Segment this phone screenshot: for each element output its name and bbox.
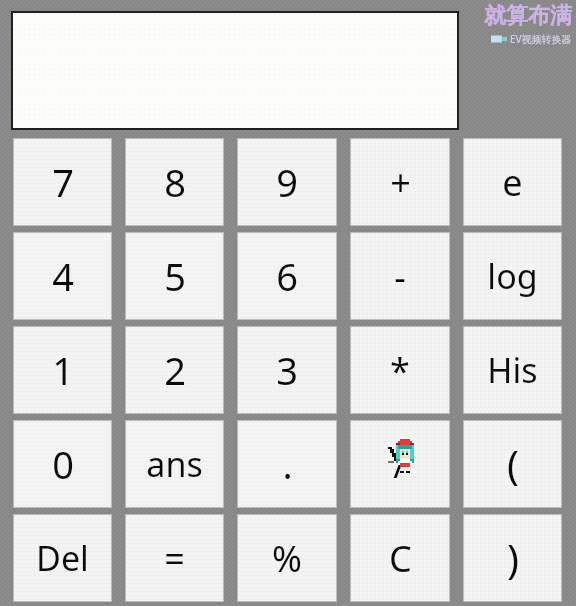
button[interactable]: 0	[13, 420, 112, 508]
staticText: )	[507, 531, 519, 585]
button[interactable]: %	[237, 514, 337, 602]
staticText: Del	[36, 535, 89, 581]
staticText: 6	[276, 250, 298, 302]
button[interactable]: )	[463, 514, 562, 602]
staticText: 7	[52, 156, 74, 208]
button[interactable]: /	[350, 420, 450, 508]
staticText: %	[272, 534, 302, 583]
staticText: .	[282, 438, 293, 490]
button[interactable]: C	[350, 514, 450, 602]
staticText: 就算布满	[484, 2, 572, 30]
staticText: 8	[164, 156, 186, 208]
staticText: +	[390, 158, 411, 207]
staticText: ans	[146, 441, 203, 487]
staticText: /	[393, 440, 407, 489]
staticText: 2	[164, 344, 186, 396]
staticText: -	[394, 252, 406, 301]
staticText: 3	[276, 344, 298, 396]
staticText: 0	[52, 438, 74, 490]
staticText: His	[487, 347, 538, 393]
button[interactable]: 1	[13, 326, 112, 414]
button[interactable]: ans	[125, 420, 224, 508]
staticText: 1	[52, 344, 74, 396]
button[interactable]: Expression display	[13, 13, 457, 128]
button[interactable]: 7	[13, 138, 112, 226]
button[interactable]: (	[463, 420, 562, 508]
button[interactable]: .	[237, 420, 337, 508]
staticText: =	[164, 534, 185, 583]
staticText: e	[502, 158, 523, 207]
staticText: log	[487, 253, 538, 299]
button[interactable]: -	[350, 232, 450, 320]
button[interactable]: log	[463, 232, 562, 320]
staticText: 9	[276, 156, 298, 208]
button[interactable]: 6	[237, 232, 337, 320]
button[interactable]: 4	[13, 232, 112, 320]
button[interactable]: 2	[125, 326, 224, 414]
button[interactable]: *	[350, 326, 450, 414]
staticText: 4	[52, 250, 74, 302]
button[interactable]: 8	[125, 138, 224, 226]
staticText: EV视频转换器	[510, 32, 572, 46]
button[interactable]: 3	[237, 326, 337, 414]
staticText: 5	[164, 250, 186, 302]
button[interactable]: =	[125, 514, 224, 602]
button[interactable]: Del	[13, 514, 112, 602]
button[interactable]: 9	[237, 138, 337, 226]
staticText: C	[389, 534, 412, 583]
button[interactable]: e	[463, 138, 562, 226]
button[interactable]: +	[350, 138, 450, 226]
button[interactable]: His	[463, 326, 562, 414]
staticText: (	[507, 437, 519, 491]
staticText: *	[390, 346, 410, 395]
button[interactable]: 5	[125, 232, 224, 320]
